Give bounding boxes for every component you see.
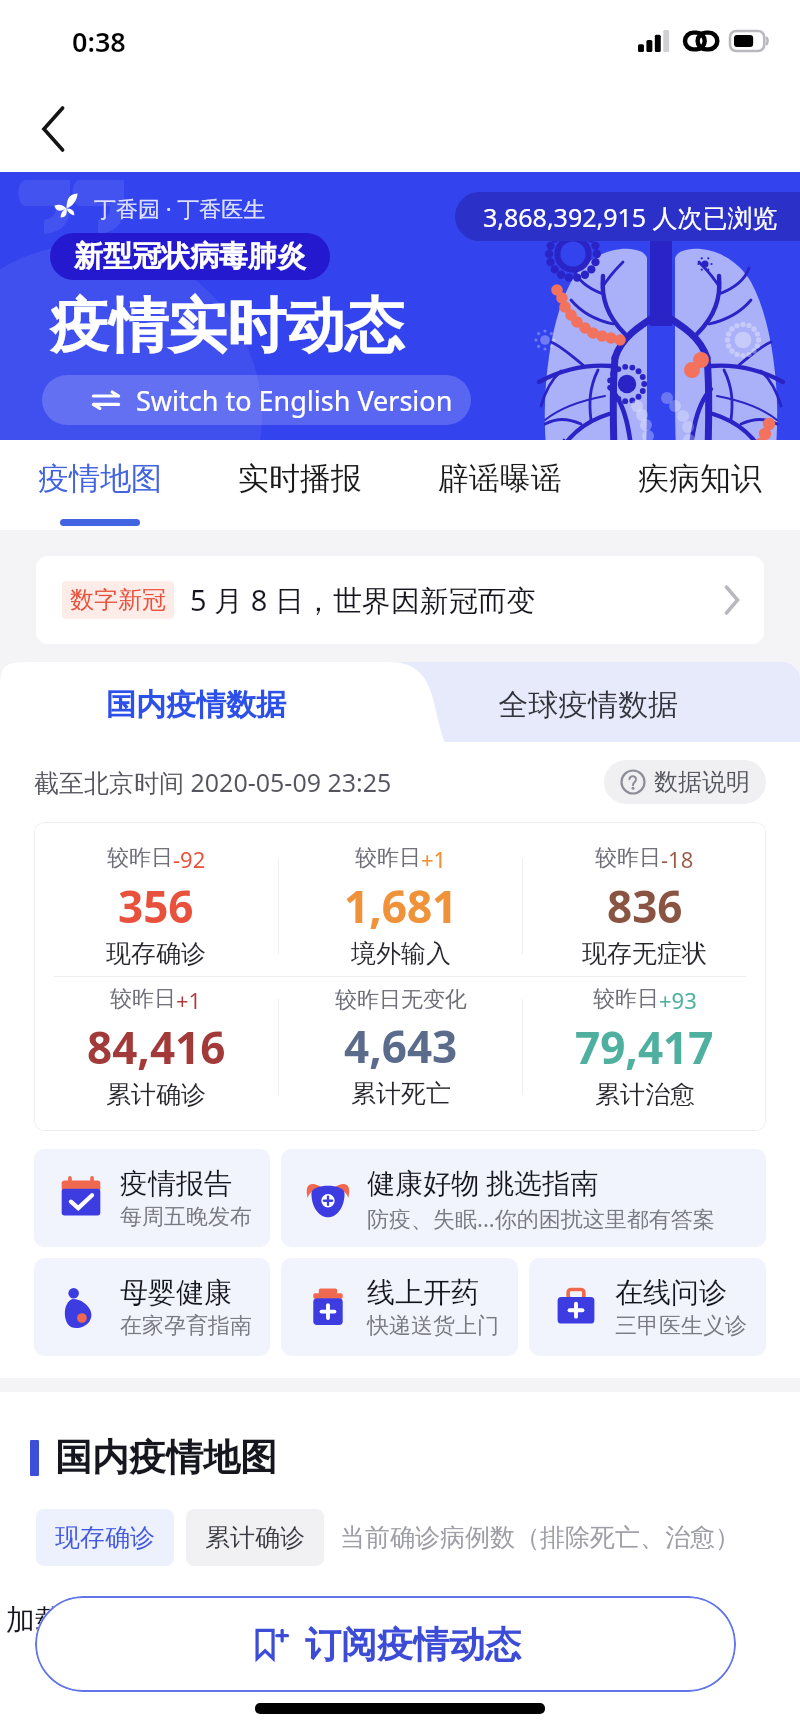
- staticText: 累计治愈: [595, 1079, 695, 1110]
- button[interactable]: 国内疫情数据: [0, 662, 427, 742]
- button[interactable]: 疾病知识: [600, 440, 800, 530]
- button[interactable]: 3,868,392,915 人次已浏览: [455, 192, 800, 241]
- button[interactable]: 辟谣曝谣: [400, 440, 600, 530]
- staticText: 较昨日: [110, 985, 176, 1013]
- staticText: 截至北京时间 2020-05-09 23:25: [34, 765, 392, 799]
- button[interactable]: Switch to English Version: [42, 375, 471, 425]
- staticText: 疫情地图: [38, 459, 162, 498]
- button[interactable]: 累计确诊: [186, 1509, 324, 1566]
- staticText: 在家孕育指南: [120, 1312, 252, 1340]
- button[interactable]: 线上开药: [281, 1258, 518, 1356]
- staticText: 1,681: [344, 876, 458, 936]
- staticText: 较昨日: [595, 844, 661, 872]
- staticText: 每周五晚发布: [120, 1203, 252, 1231]
- staticText: 现存无症状: [582, 938, 707, 969]
- staticText: 防疫、失眠...你的困扰这里都有答案: [367, 1203, 715, 1233]
- button[interactable]: 全球疫情数据: [376, 662, 800, 742]
- button[interactable]: 疫情地图: [0, 440, 200, 530]
- staticText: 加载中: [6, 1602, 93, 1639]
- staticText: 境外输入: [351, 938, 451, 969]
- staticText: 新型冠状病毒肺炎: [74, 238, 306, 275]
- staticText: 国内疫情地图: [55, 1434, 277, 1481]
- staticText: 较昨日: [107, 844, 173, 872]
- staticText: 快递送货上门: [367, 1312, 499, 1340]
- button[interactable]: 疫情报告: [34, 1149, 270, 1247]
- button[interactable]: Back: [26, 101, 82, 157]
- button[interactable]: 在线问诊: [529, 1258, 766, 1356]
- staticText: 三甲医生义诊: [615, 1312, 747, 1340]
- staticText: 国内疫情数据: [106, 686, 286, 724]
- staticText: 疫情实时动态: [50, 289, 404, 363]
- staticText: 全球疫情数据: [498, 686, 678, 724]
- button[interactable]: 实时播报: [200, 440, 400, 530]
- staticText: 丁香园 · 丁香医生: [94, 193, 266, 223]
- staticText: 健康好物 挑选指南: [367, 1163, 599, 1201]
- staticText: 0:38: [72, 23, 126, 60]
- staticText: 79,417: [575, 1017, 714, 1077]
- staticText: +1: [421, 844, 447, 874]
- staticText: 现存确诊: [55, 1522, 155, 1553]
- staticText: 累计死亡: [351, 1078, 451, 1109]
- button[interactable]: 母婴健康: [34, 1258, 270, 1356]
- button[interactable]: 数字新冠: [36, 556, 764, 644]
- button[interactable]: 健康好物 挑选指南: [281, 1149, 766, 1247]
- button[interactable]: 现存确诊: [36, 1509, 174, 1566]
- staticText: 辟谣曝谣: [438, 459, 562, 498]
- staticText: 疫情报告: [120, 1166, 232, 1201]
- staticText: 较昨日: [355, 844, 421, 872]
- staticText: 84,416: [87, 1017, 226, 1077]
- staticText: +1: [176, 985, 202, 1015]
- staticText: 当前确诊病例数（排除死亡、治愈）: [340, 1522, 740, 1553]
- staticText: -18: [661, 844, 694, 874]
- staticText: 数据说明: [654, 767, 750, 797]
- staticText: Switch to English Version: [136, 382, 453, 419]
- button[interactable]: 数据说明: [620, 767, 750, 797]
- staticText: 线上开药: [367, 1275, 479, 1310]
- staticText: 5 月 8 日，世界因新冠而变: [190, 580, 536, 620]
- staticText: 母婴健康: [120, 1275, 232, 1310]
- staticText: 实时播报: [238, 459, 362, 498]
- staticText: 较昨日: [593, 985, 659, 1013]
- staticText: 数字新冠: [70, 585, 166, 615]
- staticText: 现存确诊: [106, 938, 206, 969]
- staticText: -92: [173, 844, 206, 874]
- staticText: 3,868,392,915 人次已浏览: [483, 200, 778, 234]
- staticText: 836: [607, 876, 683, 936]
- staticText: +93: [659, 985, 697, 1015]
- staticText: 356: [118, 876, 194, 936]
- staticText: 累计确诊: [205, 1522, 305, 1553]
- staticText: 在线问诊: [615, 1275, 727, 1310]
- staticText: 疾病知识: [638, 459, 762, 498]
- button[interactable]: 订阅疫情动态: [35, 1596, 736, 1692]
- staticText: 4,643: [344, 1016, 458, 1076]
- staticText: 累计确诊: [106, 1079, 206, 1110]
- staticText: 订阅疫情动态: [305, 1622, 521, 1667]
- staticText: 较昨日无变化: [335, 986, 467, 1014]
